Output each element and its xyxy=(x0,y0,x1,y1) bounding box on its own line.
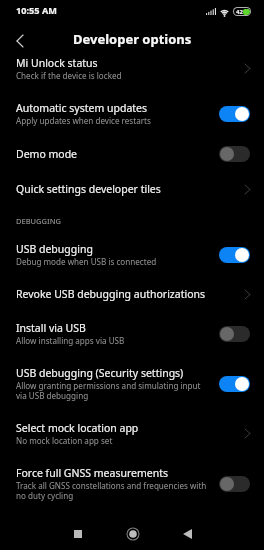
staticText: Apply updates when device restarts xyxy=(16,115,151,126)
button[interactable]: Quick settings developer tiles xyxy=(0,172,264,206)
staticText: Allow installing apps via USB xyxy=(16,335,125,346)
staticText: USB debugging (Security settings) xyxy=(16,366,184,380)
button[interactable]: Home xyxy=(119,520,146,547)
staticText: Force full GNSS measurements xyxy=(16,466,168,480)
button[interactable]: Back xyxy=(174,520,201,547)
button[interactable]: Mi Unlock status xyxy=(0,46,264,91)
button[interactable]: Select mock location app xyxy=(0,411,264,456)
staticText: DEBUGGING xyxy=(16,216,61,226)
staticText: Automatic system updates xyxy=(16,101,148,115)
staticText: Mi Unlock status xyxy=(16,56,98,70)
staticText: Allow granting permissions and simulatin… xyxy=(16,380,211,401)
button[interactable]: Force full GNSS measurements xyxy=(0,456,264,511)
button[interactable]: USB debugging xyxy=(0,232,264,277)
staticText: Debug mode when USB is connected xyxy=(16,256,157,267)
staticText: Demo mode xyxy=(16,147,78,161)
button[interactable]: Back xyxy=(10,31,30,51)
staticText: Revoke USB debugging authorizations xyxy=(16,287,206,301)
staticText: 10:55 AM xyxy=(16,4,58,17)
button[interactable]: Install via USB xyxy=(0,311,264,356)
staticText: USB debugging xyxy=(16,242,93,256)
staticText: Track all GNSS constellations and freque… xyxy=(16,480,211,501)
button[interactable]: USB debugging (Security settings) xyxy=(0,356,264,411)
button[interactable]: Demo mode xyxy=(0,136,264,172)
button[interactable]: Revoke USB debugging authorizations xyxy=(0,277,264,311)
staticText: No mock location app set xyxy=(16,435,113,446)
staticText: Developer options xyxy=(73,30,192,48)
staticText: 42 xyxy=(236,8,243,15)
staticText: Check if the device is locked xyxy=(16,70,122,81)
staticText: Quick settings developer tiles xyxy=(16,182,161,196)
staticText: Select mock location app xyxy=(16,421,139,435)
button[interactable]: Recent apps xyxy=(64,520,91,547)
staticText: Install via USB xyxy=(16,321,86,335)
button[interactable]: Automatic system updates xyxy=(0,91,264,136)
